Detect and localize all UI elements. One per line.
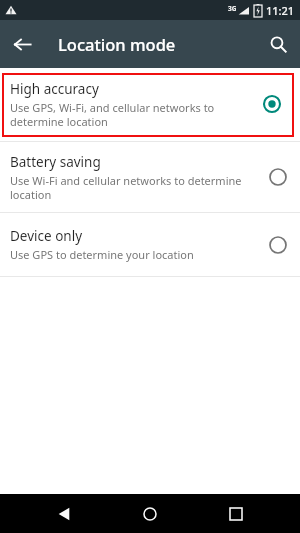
- button[interactable]: Device only: [0, 213, 300, 276]
- staticText: 3G: [228, 4, 237, 13]
- button[interactable]: Battery saving: [0, 142, 300, 212]
- staticText: Location mode: [58, 33, 176, 55]
- staticText: Use Wi-Fi and cellular networks to deter…: [10, 173, 242, 202]
- button[interactable]: Recent apps: [214, 494, 258, 533]
- button[interactable]: Navigate up: [0, 22, 44, 66]
- staticText: 11:21: [266, 3, 295, 18]
- button[interactable]: Not selected: [256, 223, 300, 267]
- button[interactable]: Home: [128, 494, 172, 533]
- staticText: Battery saving: [10, 153, 101, 171]
- staticText: Use GPS, Wi-Fi, and cellular networks to…: [10, 100, 215, 129]
- button[interactable]: Selected: [250, 82, 294, 126]
- staticText: Device only: [10, 227, 83, 245]
- staticText: Use GPS to determine your location: [10, 247, 194, 262]
- button[interactable]: High accuracy: [2, 73, 294, 135]
- staticText: High accuracy: [10, 80, 99, 98]
- button[interactable]: Back: [42, 494, 86, 533]
- button[interactable]: Search: [256, 22, 300, 66]
- button[interactable]: Not selected: [256, 155, 300, 199]
